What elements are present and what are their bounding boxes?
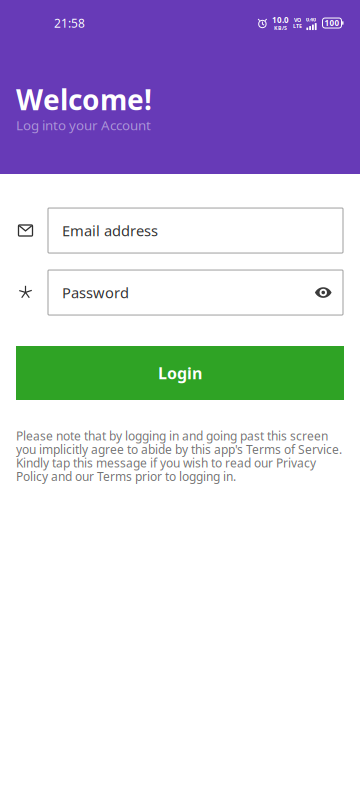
staticText: VO: [294, 16, 301, 23]
staticText: Login: [158, 362, 202, 384]
button[interactable]: Please note that by logging in and going…: [0, 428, 360, 484]
staticText: 21:58: [54, 15, 85, 31]
button[interactable]: Email address: [48, 208, 343, 253]
staticText: KB/S: [274, 24, 287, 31]
staticText: Please note that by logging in and going…: [16, 428, 342, 484]
staticText: Password: [62, 283, 129, 302]
staticText: LTE: [293, 22, 302, 30]
staticText: Welcome!: [16, 81, 152, 118]
staticText: Log into your Account: [16, 116, 151, 134]
staticText: 100: [324, 18, 339, 28]
button[interactable]: Show password: [308, 281, 338, 304]
staticText: 0.40: [306, 16, 316, 23]
staticText: 10.0: [272, 15, 289, 25]
button[interactable]: Login: [16, 346, 344, 400]
button[interactable]: Password: [48, 270, 343, 315]
staticText: Email address: [62, 221, 158, 240]
